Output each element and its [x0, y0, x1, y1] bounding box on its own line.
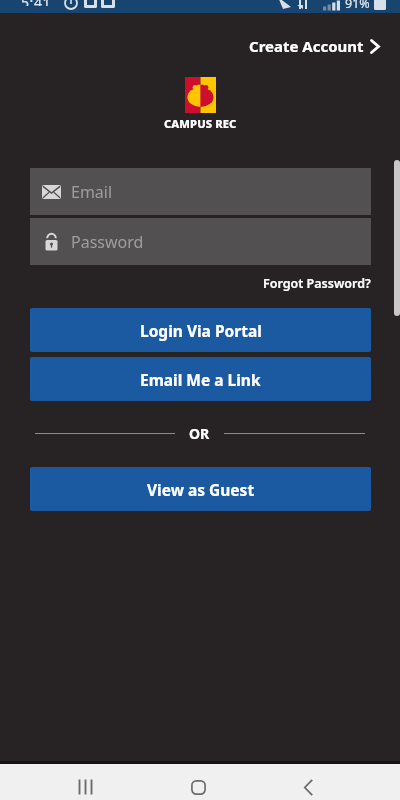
button[interactable]: [62, 764, 110, 800]
button[interactable]: Password: [30, 218, 371, 265]
button[interactable]: Forgot Password?: [263, 275, 371, 292]
button[interactable]: Email Me a Link: [30, 357, 371, 401]
staticText: Password: [71, 231, 144, 253]
staticText: OR: [189, 424, 210, 442]
staticText: CAMPUS REC: [164, 116, 237, 131]
button[interactable]: Email: [30, 168, 371, 215]
button[interactable]: [284, 764, 332, 800]
button[interactable]: Create Account: [249, 36, 380, 56]
staticText: 5:41: [21, 0, 52, 6]
staticText: Email: [71, 181, 113, 203]
button[interactable]: [174, 764, 222, 800]
staticText: Email Me a Link: [140, 369, 261, 390]
button[interactable]: Login Via Portal: [30, 308, 371, 352]
staticText: 91%: [345, 0, 370, 8]
staticText: Create Account: [249, 36, 364, 56]
staticText: View as Guest: [147, 479, 255, 500]
button[interactable]: View as Guest: [30, 467, 371, 511]
staticText: Login Via Portal: [140, 320, 262, 341]
